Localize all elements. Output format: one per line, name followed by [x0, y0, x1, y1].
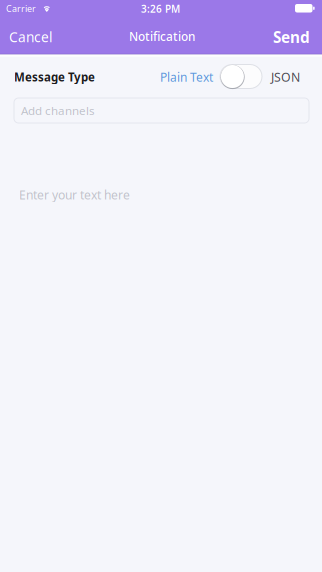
button[interactable]: Message type: Plain Text or JSON — [220, 64, 262, 88]
staticText: Carrier — [6, 2, 36, 15]
staticText: 3:26 PM — [141, 2, 180, 16]
staticText: Add channels — [21, 103, 95, 118]
button[interactable]: Send — [265, 22, 319, 52]
staticText: Message Type — [14, 69, 95, 85]
staticText: Notification — [129, 28, 195, 45]
button[interactable]: JSON — [271, 67, 305, 87]
staticText: JSON — [271, 69, 300, 85]
staticText: Send — [273, 27, 310, 47]
button[interactable]: Plain Text — [160, 67, 216, 87]
staticText: Cancel — [9, 28, 53, 46]
button[interactable]: Add channels — [14, 98, 309, 123]
button[interactable]: Cancel — [1, 22, 69, 52]
staticText: Enter your text here — [19, 186, 130, 203]
staticText: Plain Text — [160, 69, 213, 85]
